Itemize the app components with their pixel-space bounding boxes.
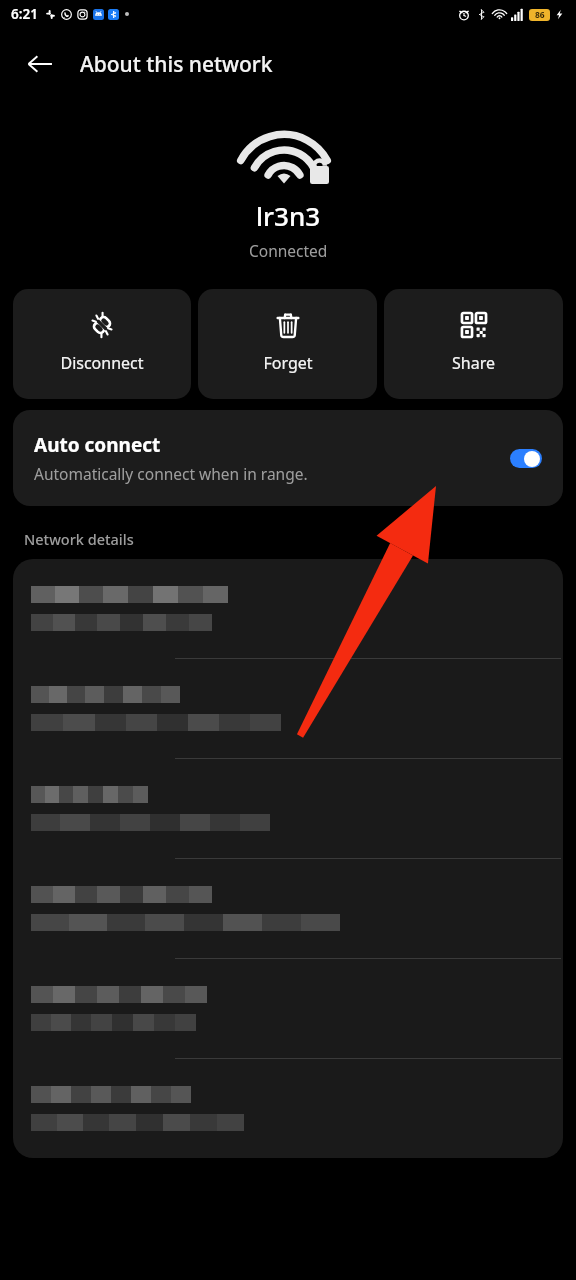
staticText: Auto connect [34, 432, 161, 458]
button[interactable]: Disconnect [13, 289, 191, 399]
staticText: Share [452, 352, 495, 374]
staticText: 86 [535, 9, 545, 21]
staticText: About this network [80, 50, 273, 79]
button[interactable]: Network detail [13, 559, 563, 658]
staticText: Automatically connect when in range. [34, 463, 308, 484]
staticText: Disconnect [60, 352, 144, 374]
button[interactable]: Network detail [13, 759, 563, 858]
staticText: lr3n3 [256, 198, 321, 233]
button[interactable]: Back [14, 38, 66, 90]
button[interactable]: Share [384, 289, 563, 399]
staticText: Network details [24, 529, 134, 549]
button[interactable]: Forget [198, 289, 377, 399]
staticText: 6:21 [11, 5, 38, 23]
button[interactable]: Auto connect toggle [510, 449, 542, 468]
button[interactable]: Network detail [13, 1059, 563, 1158]
button[interactable]: Auto connect [13, 410, 563, 506]
button[interactable]: Network detail [13, 659, 563, 758]
staticText: Forget [263, 352, 313, 374]
button[interactable]: Network detail [13, 959, 563, 1058]
staticText: Connected [249, 240, 328, 261]
button[interactable]: Network detail [13, 859, 563, 958]
